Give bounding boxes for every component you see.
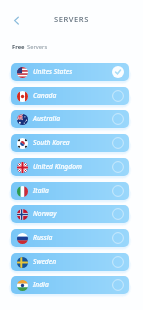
staticText: United Kingdom — [33, 162, 82, 171]
staticText: Norway — [33, 209, 57, 218]
staticText: Canada — [33, 91, 57, 100]
staticText: Servers — [27, 43, 48, 51]
button[interactable]: Sweden — [11, 253, 129, 271]
button[interactable]: Italia — [11, 182, 129, 200]
button[interactable]: Australia — [11, 110, 129, 128]
staticText: India — [33, 280, 49, 289]
staticText: Sweden — [33, 257, 57, 266]
staticText: South Korea — [33, 138, 70, 147]
button[interactable]: Russia — [11, 229, 129, 247]
button[interactable]: Unites States — [11, 63, 129, 81]
button[interactable]: Canada — [11, 87, 129, 105]
staticText: Italia — [33, 186, 49, 195]
staticText: Australia — [33, 114, 61, 123]
staticText: Unites States — [33, 67, 73, 76]
staticText: Russia — [33, 233, 53, 242]
button[interactable]: Norway — [11, 205, 129, 223]
button[interactable]: Back — [8, 12, 24, 28]
button[interactable]: South Korea — [11, 134, 129, 152]
button[interactable]: United Kingdom — [11, 158, 129, 176]
staticText: Free — [12, 43, 27, 51]
staticText: SERVERS — [54, 14, 89, 24]
button[interactable]: India — [11, 276, 129, 294]
